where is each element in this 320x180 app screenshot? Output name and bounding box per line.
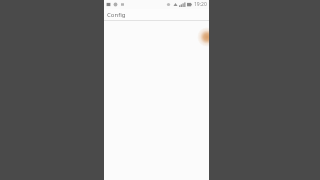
staticText: 19:20 bbox=[194, 1, 207, 8]
staticText: Config bbox=[107, 11, 126, 19]
button[interactable]: Config bbox=[104, 9, 209, 20]
